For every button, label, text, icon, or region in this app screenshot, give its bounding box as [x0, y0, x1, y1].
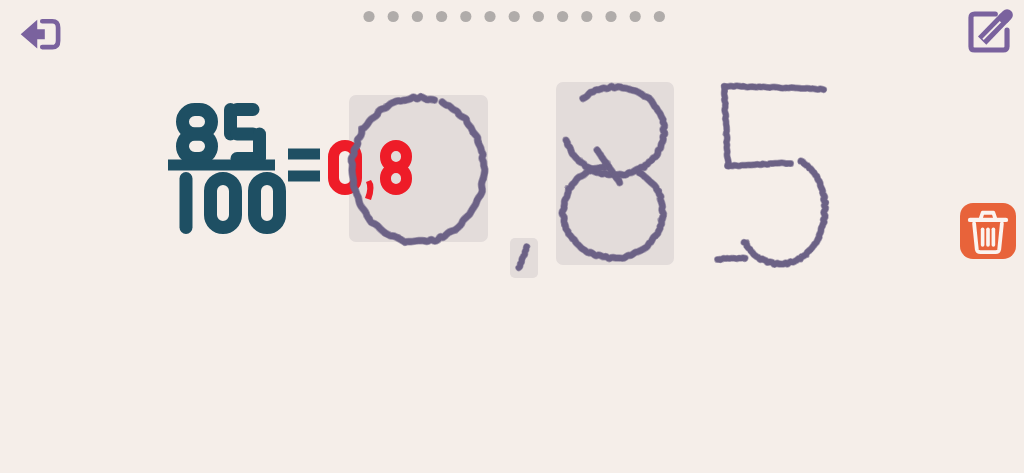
button[interactable]: Digit slot 2 [556, 82, 674, 265]
button[interactable]: Comma slot [510, 238, 538, 278]
button[interactable]: Delete [960, 203, 1016, 259]
button[interactable]: Back [6, 4, 80, 62]
button[interactable]: Edit [958, 3, 1020, 61]
button[interactable]: Digit slot 1 [349, 95, 488, 242]
